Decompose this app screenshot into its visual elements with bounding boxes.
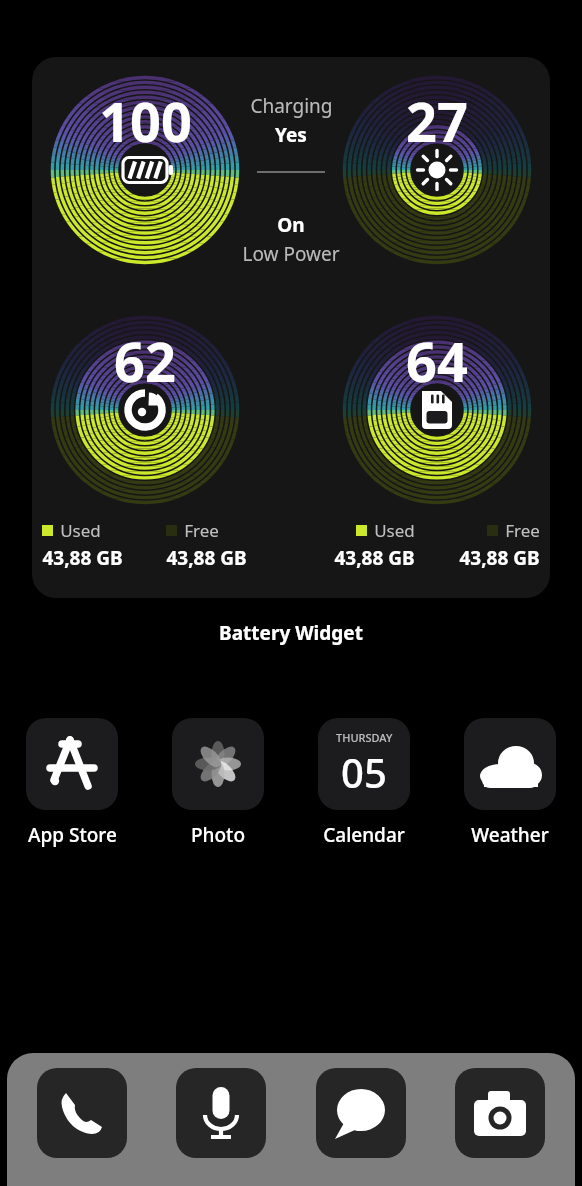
staticText: Used <box>374 519 415 542</box>
button[interactable]: Calendar <box>318 718 410 848</box>
staticText: Used <box>60 519 101 542</box>
staticText: On <box>277 212 305 238</box>
button[interactable]: Photo <box>172 718 264 848</box>
staticText: 100 <box>99 84 192 158</box>
button[interactable]: Camera <box>455 1068 545 1158</box>
staticText: Low Power <box>242 241 340 267</box>
staticText: 62 <box>114 324 176 398</box>
staticText: 43,88 GB <box>42 545 123 571</box>
staticText: Weather <box>471 822 549 848</box>
staticText: Free <box>184 519 219 542</box>
staticText: 05 <box>341 745 387 799</box>
staticText: Calendar <box>323 822 405 848</box>
button[interactable]: App Store <box>26 718 118 848</box>
staticText: Photo <box>191 822 245 848</box>
staticText: 27 <box>406 84 468 158</box>
staticText: 43,88 GB <box>166 545 247 571</box>
button[interactable]: Phone <box>37 1068 127 1158</box>
staticText: 43,88 GB <box>459 545 540 571</box>
staticText: Yes <box>275 122 307 148</box>
staticText: THURSDAY <box>336 730 393 745</box>
button[interactable]: Messages <box>316 1068 406 1158</box>
staticText: 43,88 GB <box>334 545 415 571</box>
staticText: Charging <box>250 93 333 119</box>
button[interactable]: Weather <box>464 718 556 848</box>
staticText: App Store <box>28 822 117 848</box>
staticText: Free <box>505 519 540 542</box>
button[interactable]: 100 <box>32 57 550 598</box>
staticText: Battery Widget <box>219 620 363 646</box>
button[interactable]: Voice search <box>176 1068 266 1158</box>
staticText: 64 <box>406 324 468 398</box>
